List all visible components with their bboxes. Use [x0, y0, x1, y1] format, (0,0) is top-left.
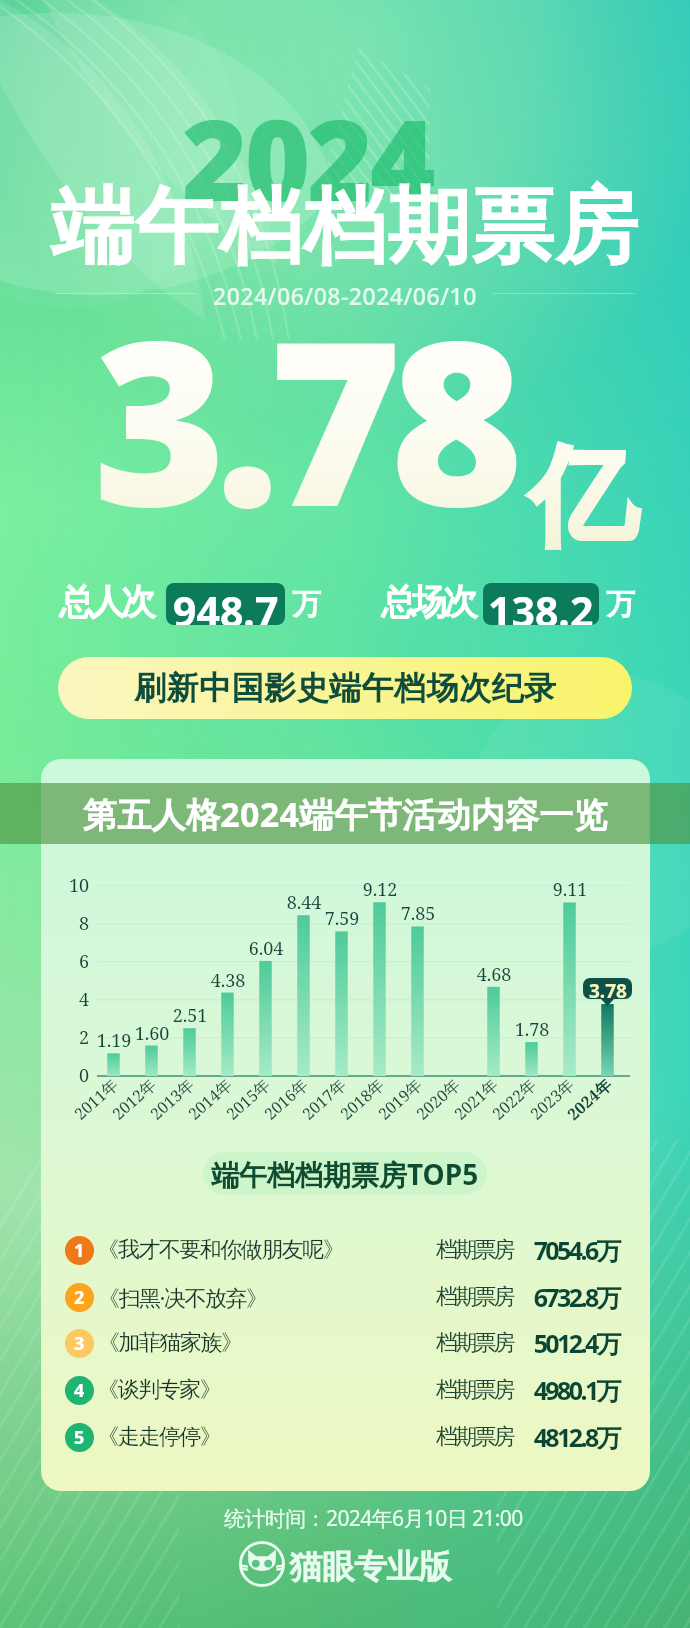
staticText: 第五人格2024端午节活动内容一览: [83, 791, 608, 837]
staticText: 2: [59, 1025, 89, 1050]
staticText: 6.04: [242, 936, 290, 961]
staticText: 4812.8万: [494, 1420, 619, 1454]
staticText: 猫眼专业版: [290, 1546, 451, 1588]
staticText: 0: [59, 1063, 89, 1088]
staticText: 档期票房: [436, 1423, 513, 1451]
staticText: 138.2: [488, 583, 594, 625]
staticText: 档期票房: [436, 1236, 513, 1264]
staticText: 档期票房: [436, 1283, 513, 1311]
staticText: 4.68: [470, 962, 518, 987]
button[interactable]: 5: [41, 1414, 650, 1460]
staticText: 2021年: [449, 1073, 503, 1124]
staticText: 2.51: [166, 1003, 214, 1028]
staticText: 9.11: [546, 877, 594, 902]
staticText: 刷新中国影史端午档场次纪录: [134, 668, 557, 708]
staticText: 5: [74, 1425, 85, 1450]
staticText: 3: [74, 1331, 85, 1356]
staticText: 6732.8万: [494, 1280, 619, 1314]
staticText: 万: [606, 586, 635, 623]
staticText: 2012年: [107, 1073, 161, 1124]
staticText: 5012.4万: [494, 1326, 619, 1360]
staticText: 948.7: [173, 583, 279, 625]
button[interactable]: 3: [41, 1320, 650, 1366]
staticText: 4: [59, 987, 89, 1012]
staticText: 7.59: [318, 906, 366, 931]
staticText: 档期票房: [436, 1329, 513, 1357]
other: Maoyan logo: [239, 1541, 285, 1587]
staticText: 1.60: [128, 1021, 176, 1046]
staticText: 4.38: [204, 968, 252, 993]
staticText: 总人次: [61, 580, 154, 624]
staticText: 2024年: [562, 1073, 616, 1125]
staticText: 3.78: [589, 978, 627, 999]
button[interactable]: 1: [41, 1227, 650, 1273]
staticText: 9.12: [356, 877, 404, 902]
staticText: 7054.6万: [494, 1233, 619, 1267]
staticText: 6: [59, 949, 89, 974]
staticText: 《加菲猫家族》: [98, 1329, 242, 1357]
staticText: 2017年: [297, 1073, 351, 1124]
staticText: 2024: [182, 81, 433, 234]
staticText: 2014年: [183, 1073, 237, 1124]
staticText: 3.78: [93, 262, 512, 573]
button[interactable]: 刷新中国影史端午档场次纪录: [58, 657, 632, 719]
staticText: 1: [74, 1238, 85, 1263]
staticText: 2020年: [411, 1073, 465, 1124]
staticText: 《走走停停》: [98, 1423, 221, 1451]
staticText: 2023年: [525, 1073, 579, 1124]
staticText: 2024/06/08-2024/06/10: [213, 280, 477, 306]
staticText: 2: [74, 1285, 85, 1310]
staticText: 端午档档期票房TOP5: [211, 1155, 479, 1193]
staticText: 4980.1万: [494, 1373, 619, 1407]
button[interactable]: 2: [41, 1274, 650, 1320]
staticText: 端午档档期票房: [0, 175, 690, 280]
staticText: 《扫黑·决不放弃》: [98, 1282, 267, 1312]
staticText: 10: [59, 873, 89, 898]
staticText: 8.44: [280, 890, 328, 915]
staticText: 2015年: [221, 1073, 275, 1124]
staticText: 亿: [529, 430, 637, 566]
staticText: 2011年: [69, 1073, 123, 1124]
staticText: 7.85: [394, 901, 442, 926]
staticText: 1.78: [508, 1017, 556, 1042]
staticText: 档期票房: [436, 1376, 513, 1404]
staticText: 2018年: [335, 1073, 389, 1124]
staticText: 2013年: [145, 1073, 199, 1124]
staticText: 8: [59, 911, 89, 936]
staticText: 万: [292, 586, 321, 623]
staticText: 总场次: [383, 580, 476, 624]
button[interactable]: 4: [41, 1367, 650, 1413]
staticText: 2019年: [373, 1073, 427, 1124]
staticText: 《谈判专家》: [98, 1376, 221, 1404]
staticText: 4: [74, 1378, 85, 1403]
staticText: 《我才不要和你做朋友呢》: [98, 1236, 344, 1264]
staticText: 1.19: [90, 1028, 138, 1053]
staticText: 2016年: [259, 1073, 313, 1124]
staticText: 2022年: [487, 1073, 541, 1124]
staticText: 统计时间：2024年6月10日 21:00: [224, 1504, 523, 1533]
